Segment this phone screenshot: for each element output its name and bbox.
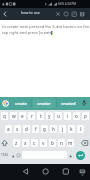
button[interactable]: g	[41, 125, 48, 133]
staticText: r	[31, 113, 33, 119]
button[interactable]	[20, 166, 32, 178]
staticText: create	[15, 101, 27, 106]
button[interactable]: k	[68, 125, 75, 133]
button[interactable]	[60, 166, 72, 178]
staticText: o	[75, 113, 78, 119]
button[interactable]: t	[37, 112, 44, 120]
staticText: v	[42, 140, 45, 146]
staticText: e	[21, 113, 24, 119]
button[interactable]: i	[64, 112, 71, 120]
staticText: b	[51, 140, 54, 146]
staticText: c	[33, 140, 36, 146]
button[interactable]	[33, 99, 55, 108]
staticText: a	[7, 126, 10, 132]
button[interactable]: created	[57, 98, 79, 109]
staticText: j	[62, 126, 64, 132]
button[interactable]	[40, 166, 52, 178]
staticText: u	[57, 113, 60, 119]
button[interactable]: h	[50, 125, 57, 133]
staticText: ?123	[1, 153, 8, 157]
button[interactable]: creater	[33, 98, 55, 109]
staticText: h	[52, 126, 55, 132]
button[interactable]: p	[82, 112, 89, 120]
button[interactable]: m	[67, 139, 74, 147]
staticText: i	[67, 113, 69, 119]
button[interactable]: u	[55, 112, 62, 120]
staticText: n	[60, 140, 63, 146]
button[interactable]: y	[46, 112, 53, 120]
staticText: created	[61, 101, 76, 106]
button[interactable]: s	[14, 125, 21, 133]
button[interactable]: z	[13, 139, 20, 147]
staticText: creater	[37, 101, 51, 106]
staticText: w	[12, 113, 16, 119]
button[interactable]: a	[5, 125, 12, 133]
button[interactable]: create	[11, 98, 31, 109]
button[interactable]: q	[1, 112, 8, 120]
staticText: m	[68, 140, 73, 146]
button[interactable]: w	[10, 112, 17, 120]
staticText: x	[24, 140, 27, 146]
button[interactable]: b	[49, 139, 56, 147]
button[interactable]: r	[28, 112, 35, 120]
button[interactable]: c	[31, 139, 38, 147]
staticText: how to use	[21, 10, 40, 15]
staticText: top right and press [create]	[2, 30, 54, 35]
staticText: s	[16, 126, 19, 132]
button[interactable]: d	[23, 125, 30, 133]
button[interactable]	[76, 151, 85, 160]
button[interactable]: v	[40, 139, 47, 147]
staticText: y	[48, 113, 51, 119]
staticText: p	[84, 113, 87, 119]
button[interactable]: n	[58, 139, 65, 147]
staticText: f	[35, 126, 37, 132]
button[interactable]: j	[59, 125, 66, 133]
button[interactable]: l	[77, 125, 84, 133]
button[interactable]: o	[73, 112, 80, 120]
staticText: q	[3, 113, 6, 119]
staticText: d	[25, 126, 28, 132]
staticText: z	[15, 140, 18, 146]
button[interactable]: f	[32, 125, 39, 133]
staticText: l	[80, 126, 82, 132]
staticText: t	[40, 113, 42, 119]
staticText: to create note pressed the 3-dot button …	[2, 24, 90, 29]
button[interactable]: x	[22, 139, 29, 147]
button[interactable]	[0, 8, 90, 20]
button[interactable]: e	[19, 112, 26, 120]
staticText: k	[70, 126, 73, 132]
staticText: 66% 4:34 PM	[58, 2, 76, 6]
staticText: g	[43, 126, 46, 132]
